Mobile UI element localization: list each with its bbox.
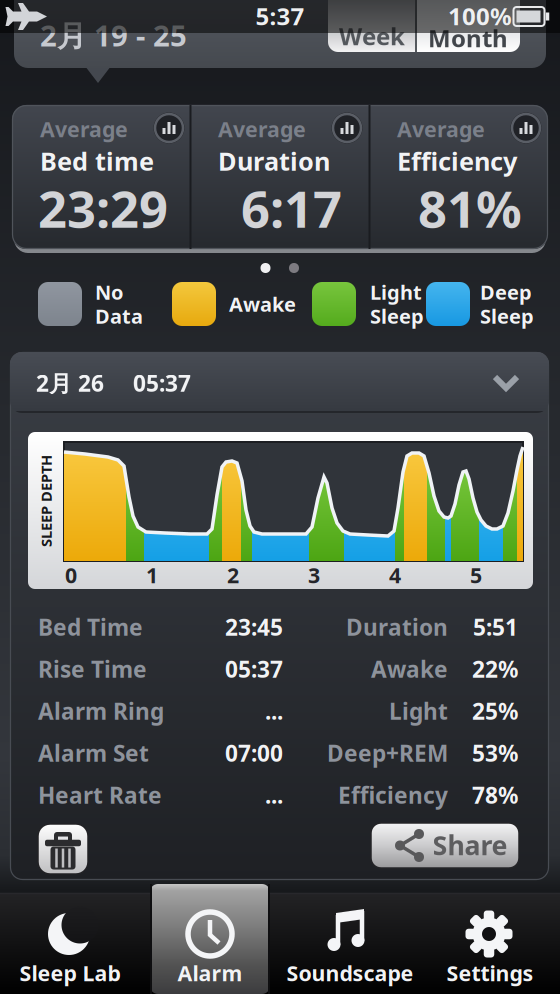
staticText: 4: [389, 561, 401, 589]
staticText: 81%: [418, 174, 522, 242]
staticText: Alarm Ring: [38, 696, 164, 726]
staticText: Efficiency: [397, 144, 517, 178]
staticText: Week: [339, 20, 405, 52]
staticText: Alarm: [177, 959, 242, 987]
button[interactable]: Week: [328, 0, 416, 52]
button[interactable]: Share: [371, 823, 519, 868]
button[interactable]: Settings: [425, 894, 555, 993]
staticText: Awake: [229, 291, 296, 317]
staticText: 07:00: [225, 738, 283, 768]
staticText: Soundscape: [286, 959, 413, 987]
staticText: Deep: [480, 279, 532, 305]
staticText: Rise Time: [38, 654, 147, 684]
button[interactable]: Statistics: [331, 112, 363, 144]
staticText: 05:37: [133, 368, 191, 398]
staticText: Duration: [346, 612, 448, 642]
staticText: 53%: [472, 738, 518, 768]
button[interactable]: Sleep Lab: [5, 894, 135, 993]
staticText: Efficiency: [338, 780, 448, 810]
button[interactable]: Month: [416, 0, 520, 52]
staticText: SLEEP DEPTH: [0, 491, 92, 511]
staticText: Alarm Set: [38, 738, 149, 768]
staticText: Sleep Lab: [19, 959, 120, 987]
staticText: 5: [470, 561, 482, 589]
staticText: No: [95, 279, 124, 305]
staticText: Light: [389, 696, 448, 726]
staticText: Sleep: [370, 303, 424, 329]
staticText: 100%: [448, 0, 512, 32]
staticText: 23:29: [38, 174, 168, 242]
staticText: Data: [95, 303, 143, 329]
button[interactable]: Soundscape: [285, 894, 415, 993]
staticText: Average: [40, 115, 128, 143]
button[interactable]: Statistics: [510, 112, 542, 144]
staticText: ...: [265, 780, 283, 810]
staticText: Duration: [218, 144, 330, 178]
staticText: 1: [146, 561, 158, 589]
staticText: 22%: [472, 654, 518, 684]
staticText: 5:37: [255, 0, 304, 32]
button[interactable]: 2月 26: [10, 352, 549, 413]
staticText: Month: [428, 22, 508, 54]
staticText: Awake: [371, 654, 448, 684]
staticText: Deep+REM: [327, 738, 448, 768]
staticText: Light: [370, 279, 422, 305]
button[interactable]: Delete: [38, 824, 88, 874]
staticText: Share: [432, 827, 507, 863]
staticText: 2月 19 - 25: [40, 15, 187, 54]
staticText: Settings: [446, 959, 533, 987]
staticText: Heart Rate: [38, 780, 162, 810]
staticText: 2月 26: [36, 368, 104, 398]
staticText: 78%: [472, 780, 518, 810]
staticText: 3: [308, 561, 320, 589]
staticText: Average: [397, 115, 485, 143]
staticText: 0: [65, 561, 77, 589]
staticText: 2: [227, 561, 239, 589]
staticText: Bed time: [40, 144, 154, 178]
staticText: Bed Time: [38, 612, 143, 642]
staticText: Sleep: [480, 303, 534, 329]
staticText: ...: [265, 696, 283, 726]
staticText: 05:37: [225, 654, 283, 684]
button[interactable]: Alarm: [145, 894, 275, 993]
staticText: 6:17: [241, 174, 342, 242]
staticText: Average: [218, 115, 306, 143]
staticText: 23:45: [225, 612, 283, 642]
staticText: 5:51: [473, 612, 518, 642]
button[interactable]: Statistics: [153, 112, 185, 144]
staticText: 25%: [472, 696, 518, 726]
